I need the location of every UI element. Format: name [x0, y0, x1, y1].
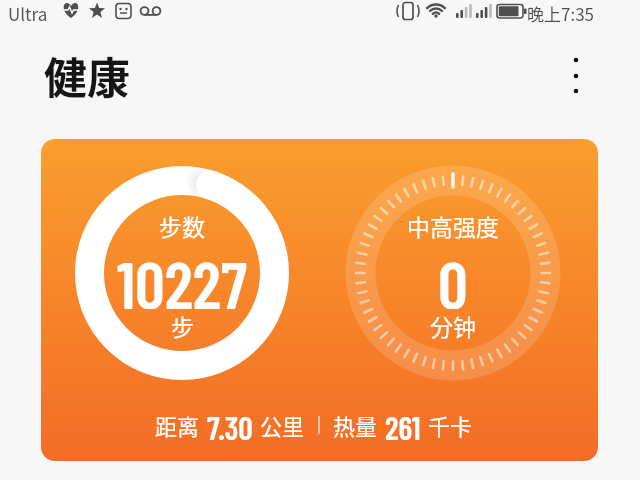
staticText: Ultra: [8, 1, 48, 25]
staticText: 步数: [159, 209, 205, 241]
staticText: 热量: [333, 409, 378, 441]
staticText: 0: [438, 243, 468, 309]
staticText: 261: [385, 408, 421, 442]
staticText: 千卡: [428, 409, 473, 441]
button[interactable]: 步数: [41, 139, 598, 461]
staticText: 分钟: [430, 309, 476, 341]
staticText: 公里: [260, 409, 305, 441]
button[interactable]: [560, 45, 592, 105]
staticText: 7.30: [207, 408, 253, 442]
staticText: 10227: [117, 243, 247, 309]
staticText: 健康: [44, 44, 130, 106]
staticText: 距离: [155, 409, 200, 441]
staticText: 中高强度: [407, 209, 499, 241]
staticText: 晚上7:35: [527, 1, 595, 25]
staticText: 步: [171, 309, 194, 341]
